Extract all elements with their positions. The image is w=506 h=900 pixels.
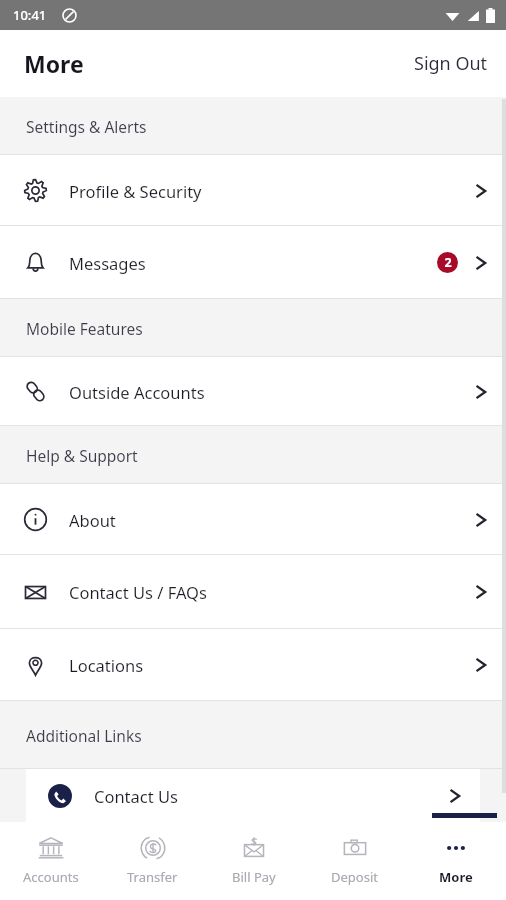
staticText: Profile & Security	[69, 180, 202, 202]
button[interactable]: Transfer	[102, 822, 203, 900]
staticText: Locations	[69, 654, 144, 676]
staticText: Help & Support	[26, 445, 138, 466]
button[interactable]: Contact Us	[26, 769, 480, 822]
staticText: Messages	[69, 252, 146, 274]
button[interactable]: Accounts	[0, 822, 102, 900]
button[interactable]: Profile & Security	[0, 155, 506, 226]
staticText: More	[439, 868, 473, 886]
button[interactable]: More	[405, 822, 506, 900]
button[interactable]: Contact Us / FAQs	[0, 555, 506, 629]
staticText: Deposit	[331, 868, 378, 886]
staticText: 2	[444, 254, 452, 271]
staticText: 10:41	[13, 6, 47, 24]
button[interactable]: Locations	[0, 629, 506, 701]
button[interactable]: Deposit	[304, 822, 405, 900]
staticText: Bill Pay	[232, 868, 276, 886]
staticText: Additional Links	[26, 725, 142, 746]
staticText: Settings & Alerts	[26, 116, 147, 137]
button[interactable]: Outside Accounts	[0, 357, 506, 426]
button[interactable]: Messages	[0, 226, 506, 299]
staticText: Sign Out	[414, 51, 488, 76]
staticText: More	[24, 48, 84, 79]
staticText: Transfer	[127, 868, 178, 886]
staticText: Accounts	[23, 868, 79, 886]
staticText: Outside Accounts	[69, 381, 205, 403]
staticText: About	[69, 509, 116, 531]
staticText: Contact Us / FAQs	[69, 581, 207, 603]
staticText: Contact Us	[94, 785, 178, 807]
button[interactable]: Bill Pay	[203, 822, 304, 900]
staticText: Mobile Features	[26, 318, 143, 339]
button[interactable]: Sign Out	[396, 39, 506, 88]
button[interactable]: About	[0, 484, 506, 555]
